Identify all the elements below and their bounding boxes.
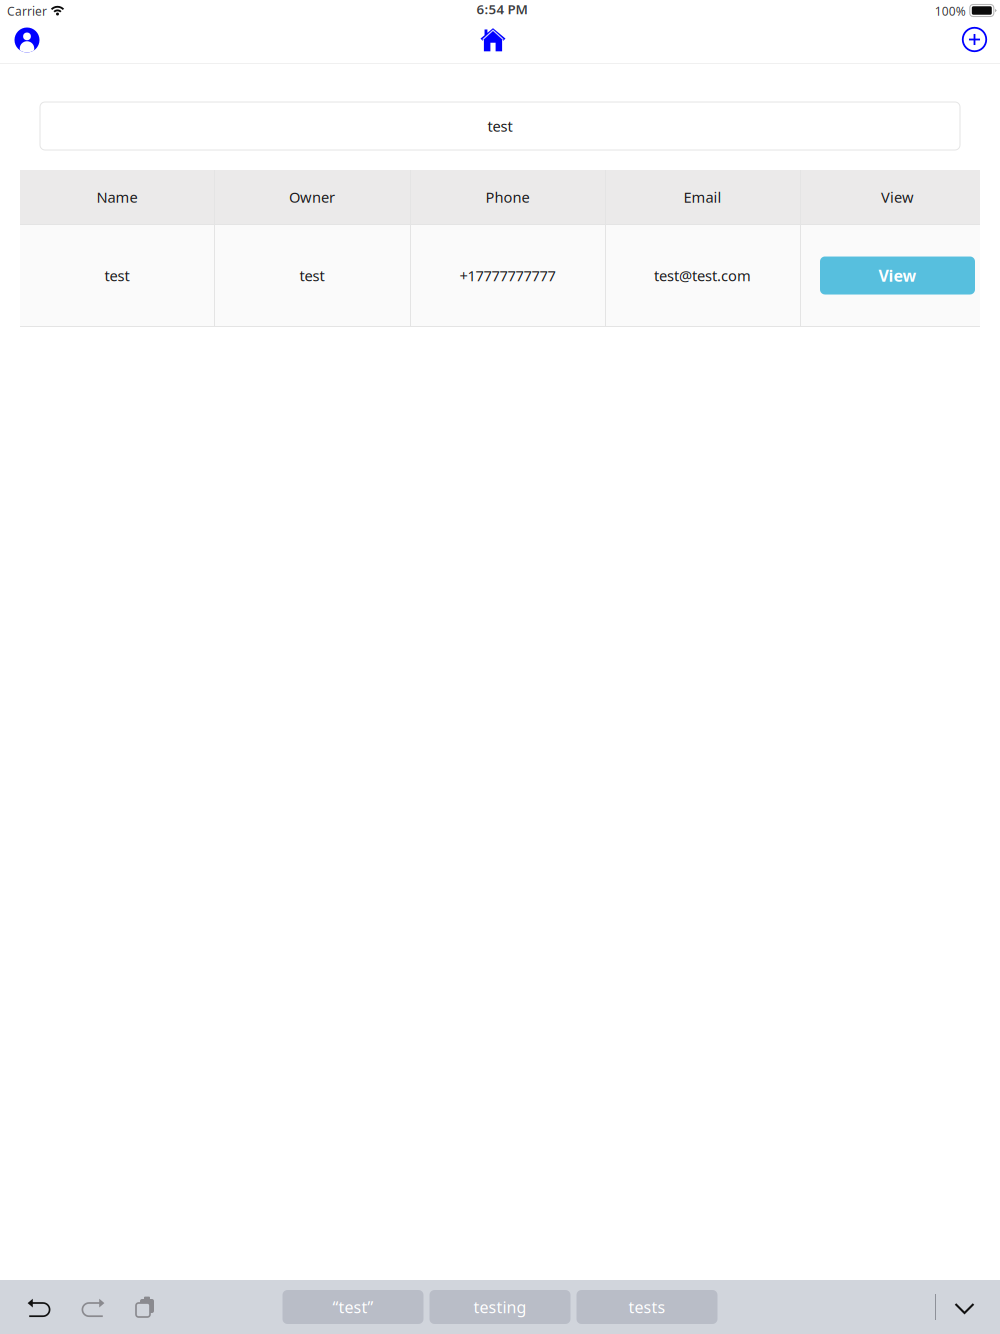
button[interactable]: Account [3,22,51,63]
staticText: Name [96,187,137,207]
button[interactable]: Add [948,22,996,63]
button[interactable]: Redo [65,1280,117,1334]
button[interactable]: “test” [282,1290,423,1324]
button[interactable]: Paste [117,1280,169,1334]
staticText: View [881,187,914,207]
staticText: 100% [935,3,966,19]
button[interactable]: Hide keyboard [936,1280,993,1334]
button[interactable]: testing [429,1290,570,1324]
staticText: test [104,266,129,285]
staticText: Email [683,187,721,207]
button[interactable]: tests [576,1290,717,1324]
staticText: “test” [332,1296,373,1318]
staticText: test@test.com [654,266,751,285]
button[interactable]: Undo [13,1280,65,1334]
staticText: Owner [289,187,335,207]
staticText: testing [473,1296,526,1318]
staticText: Phone [485,187,529,207]
button[interactable]: Home [475,22,523,63]
staticText: 6:54 PM [476,0,527,18]
staticText: test [487,116,512,136]
button[interactable]: View [20,170,215,271]
staticText: View [878,265,916,286]
button[interactable]: test [0,102,1000,150]
staticText: +17777777777 [459,266,555,285]
staticText: tests [628,1296,665,1318]
staticText: Carrier [7,3,47,19]
staticText: test [299,266,324,285]
